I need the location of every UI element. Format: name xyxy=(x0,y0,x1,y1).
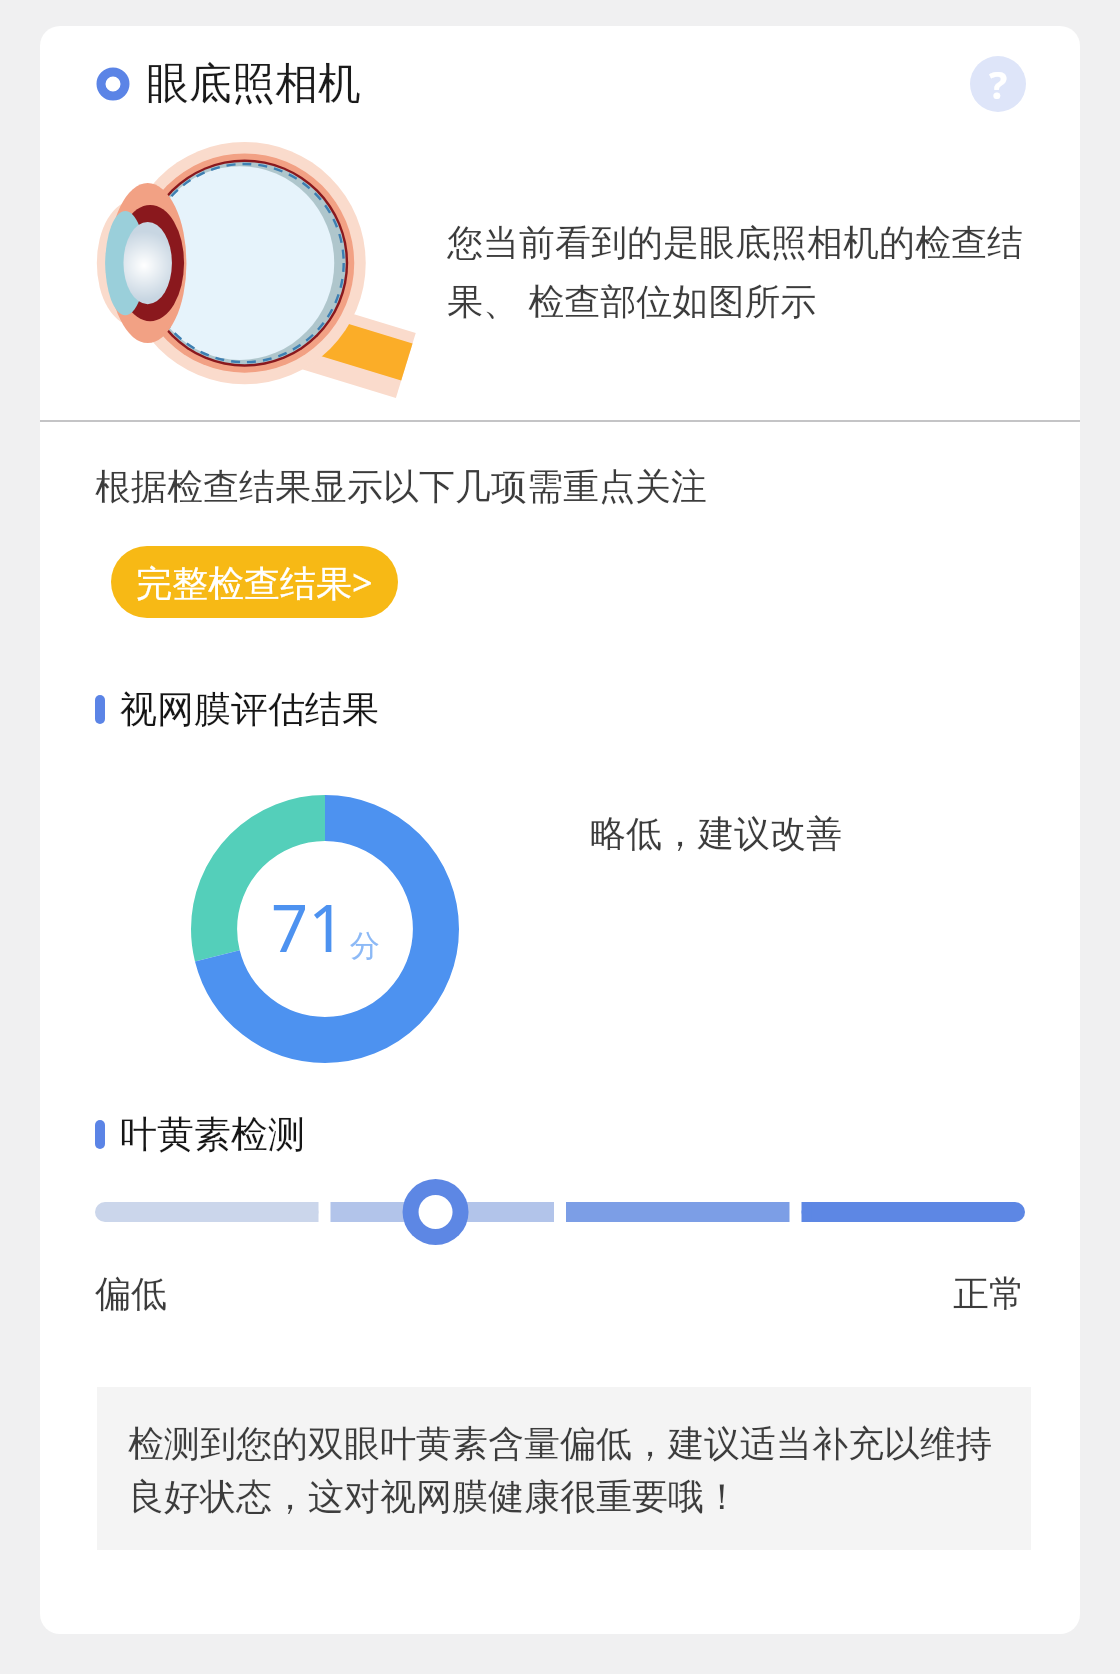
staticText: 完整检查结果> xyxy=(136,558,373,607)
staticText: 正常 xyxy=(953,1271,1025,1316)
other: Eye anatomy diagram xyxy=(92,128,396,396)
staticText: 视网膜评估结果 xyxy=(120,686,379,733)
staticText: 检测到您的双眼叶黄素含量偏低，建议适当补充以维持良好状态，这对视网膜健康很重要哦… xyxy=(128,1421,1013,1519)
staticText: 您当前看到的是眼底照相机的检查结果、 检查部位如图所示 xyxy=(447,220,1042,324)
staticText: 眼底照相机 xyxy=(146,57,361,111)
staticText: 略低，建议改善 xyxy=(590,811,842,856)
staticText: 叶黄素检测 xyxy=(120,1111,305,1158)
staticText: 71 xyxy=(271,883,346,972)
staticText: ? xyxy=(989,58,1008,110)
button[interactable]: Lutein level indicator xyxy=(95,1172,1025,1252)
staticText: 偏低 xyxy=(95,1271,167,1316)
staticText: 分 xyxy=(350,927,380,965)
button[interactable]: Help xyxy=(970,56,1026,112)
staticText: 根据检查结果显示以下几项需重点关注 xyxy=(95,464,707,509)
button[interactable]: 完整检查结果> xyxy=(111,546,398,618)
